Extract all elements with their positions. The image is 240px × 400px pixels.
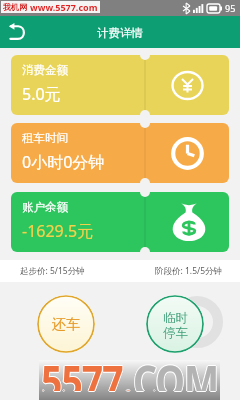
button[interactable]: 消费金额 xyxy=(11,55,229,115)
button[interactable]: Back xyxy=(0,16,32,48)
staticText: 5.0元 xyxy=(22,83,61,105)
staticText: COM xyxy=(133,352,218,392)
staticText: 消费金额 xyxy=(22,63,68,77)
button[interactable]: 还车 xyxy=(37,295,95,353)
staticText: 阶段价: 1.5/5分钟 xyxy=(155,265,223,277)
staticText: 租车时间 xyxy=(22,131,68,145)
staticText: 我机网 xyxy=(3,2,27,12)
staticText: 5577 xyxy=(41,350,123,390)
staticText: COM xyxy=(132,351,218,391)
staticText: . xyxy=(122,351,132,391)
staticText: 还车 xyxy=(52,316,80,334)
staticText: 95 xyxy=(225,2,236,14)
staticText: www.5577.com xyxy=(30,1,98,13)
button[interactable]: 临时 停车 xyxy=(146,295,204,353)
staticText: COM xyxy=(133,350,218,390)
staticText: 计费详情 xyxy=(97,26,143,40)
staticText: COM xyxy=(133,351,218,391)
staticText: -1629.5元 xyxy=(22,220,94,242)
staticText: 5577 xyxy=(41,351,123,391)
button[interactable]: 租车时间 xyxy=(11,123,229,183)
staticText: 账户余额 xyxy=(22,200,68,214)
staticText: 5577 xyxy=(40,351,122,391)
button[interactable]: 账户余额 xyxy=(11,192,229,252)
staticText: . xyxy=(123,350,133,390)
staticText: 临时 停车 xyxy=(163,310,188,341)
staticText: 0小时0分钟 xyxy=(22,151,105,173)
staticText: . xyxy=(123,352,133,392)
staticText: . xyxy=(123,351,133,391)
staticText: 5577 xyxy=(42,351,124,391)
staticText: 5577 xyxy=(41,352,123,392)
staticText: . xyxy=(124,351,134,391)
staticText: COM xyxy=(134,351,219,391)
staticText: 起步价: 5/15分钟 xyxy=(20,265,85,277)
